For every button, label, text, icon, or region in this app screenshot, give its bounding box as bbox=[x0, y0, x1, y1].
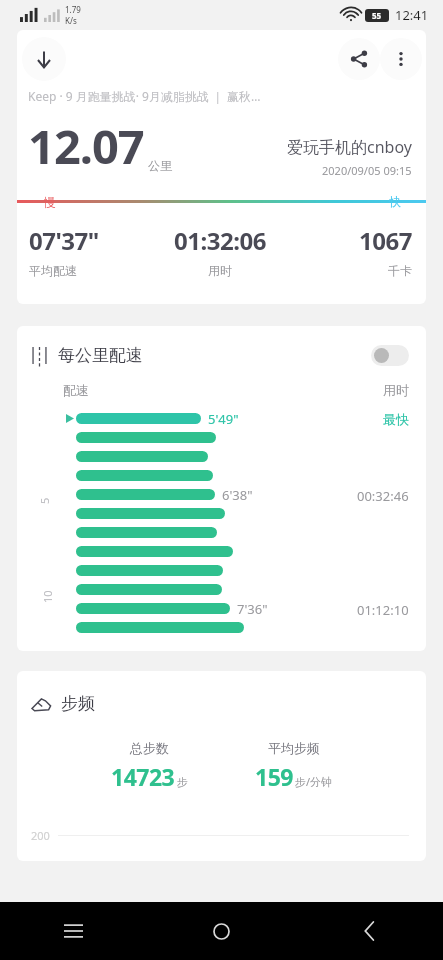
staticText: 01:12:10 bbox=[357, 601, 409, 619]
button[interactable]: Download bbox=[22, 37, 66, 81]
staticText: 步频 bbox=[61, 693, 95, 714]
button[interactable]: More options bbox=[380, 38, 422, 80]
staticText: 快 bbox=[389, 194, 401, 209]
staticText: 用时 bbox=[208, 263, 232, 278]
button[interactable]: Toggle pace detail bbox=[371, 345, 409, 366]
staticText: 步/分钟 bbox=[295, 774, 333, 789]
staticText: 00:32:46 bbox=[357, 487, 409, 505]
staticText: 2020/09/05 09:15 bbox=[322, 163, 412, 178]
staticText: 14723 bbox=[111, 761, 175, 792]
staticText: 平均配速 bbox=[29, 263, 77, 278]
staticText: 爱玩手机的cnboy bbox=[287, 136, 412, 158]
staticText: K/s bbox=[65, 15, 77, 26]
button[interactable]: Home bbox=[147, 902, 295, 960]
staticText: 公里 bbox=[148, 158, 172, 173]
staticText: 10 bbox=[40, 590, 55, 603]
staticText: 最快 bbox=[383, 411, 409, 427]
staticText: 平均步频 bbox=[268, 740, 320, 756]
staticText: 用时 bbox=[383, 382, 409, 398]
staticText: 慢 bbox=[44, 194, 56, 209]
button[interactable]: Share bbox=[338, 38, 380, 80]
staticText: 配速 bbox=[63, 382, 89, 398]
button[interactable]: Back bbox=[295, 902, 443, 960]
staticText: 千卡 bbox=[388, 263, 412, 278]
staticText: 每公里配速 bbox=[58, 345, 143, 366]
staticText: 7'36" bbox=[237, 600, 268, 618]
staticText: 步 bbox=[177, 775, 188, 789]
staticText: Keep · 9 月跑量挑战· 9月减脂挑战 ｜ 赢秋… bbox=[28, 88, 261, 104]
button[interactable]: Recents bbox=[0, 902, 147, 960]
staticText: 01:32:06 bbox=[174, 224, 266, 257]
staticText: 1067 bbox=[359, 224, 412, 257]
staticText: 1.79 bbox=[65, 4, 81, 15]
staticText: 总步数 bbox=[130, 740, 169, 756]
staticText: 07'37" bbox=[29, 224, 99, 257]
staticText: 5'49" bbox=[208, 410, 239, 428]
staticText: 200 bbox=[31, 828, 50, 843]
staticText: 159 bbox=[255, 761, 293, 792]
staticText: 12:41 bbox=[395, 6, 429, 24]
staticText: 12.07 bbox=[28, 114, 144, 178]
staticText: 5 bbox=[37, 497, 52, 504]
staticText: 6'38" bbox=[222, 486, 253, 504]
staticText: 55 bbox=[372, 10, 382, 21]
